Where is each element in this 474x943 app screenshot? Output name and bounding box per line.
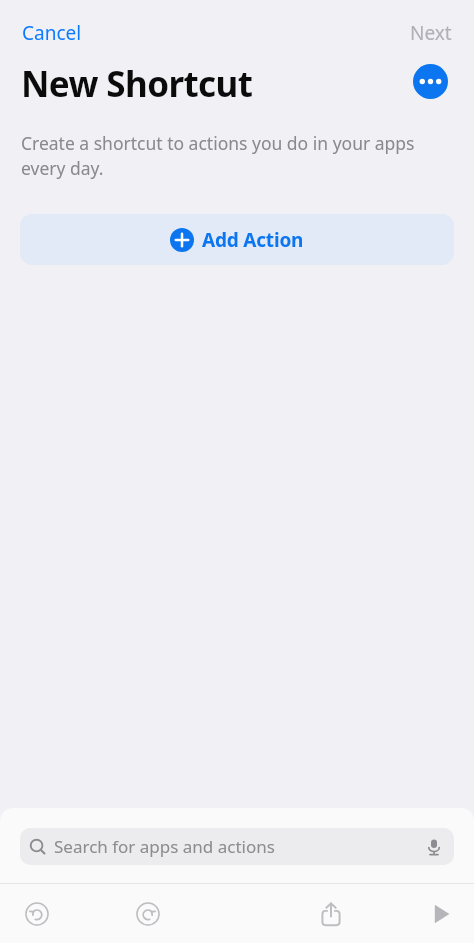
button[interactable]: More options <box>413 64 448 99</box>
staticText: Cancel <box>22 20 82 46</box>
staticText: New Shortcut <box>21 60 253 108</box>
button[interactable]: Voice search <box>424 837 444 857</box>
button[interactable]: Search for apps and actions <box>20 828 454 865</box>
staticText: Create a shortcut to actions you do in y… <box>21 131 441 181</box>
staticText: Add Action <box>202 227 304 253</box>
button[interactable]: Add Action <box>20 214 454 265</box>
staticText: Next <box>410 20 452 46</box>
button[interactable]: Next <box>396 14 466 52</box>
staticText: Search for apps and actions <box>54 835 275 858</box>
button[interactable]: Redo <box>128 894 168 934</box>
button[interactable]: Undo <box>17 894 57 934</box>
button[interactable]: Run shortcut <box>421 894 461 934</box>
button[interactable]: Cancel <box>8 14 96 52</box>
button[interactable]: Share <box>311 894 351 934</box>
